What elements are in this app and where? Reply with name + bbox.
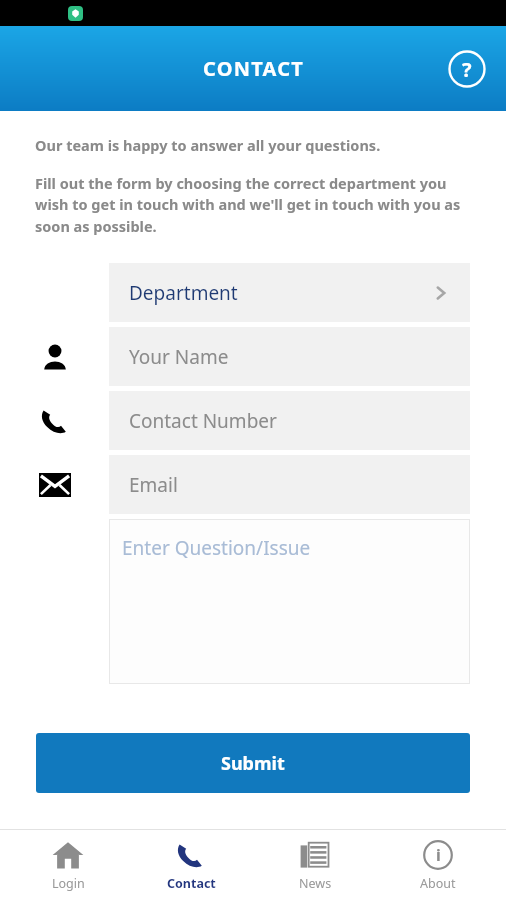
staticText: Contact Number (129, 408, 277, 434)
staticText: Login (52, 875, 85, 892)
staticText: Our team is happy to answer all your que… (35, 135, 381, 155)
button[interactable]: Department (109, 263, 470, 322)
button[interactable]: Contact Number (109, 391, 470, 450)
button[interactable]: Your Name (109, 327, 470, 386)
staticText: Contact (167, 875, 216, 892)
button[interactable]: News (260, 830, 370, 900)
staticText: i (436, 844, 441, 866)
button[interactable]: Help (445, 47, 489, 91)
staticText: News (299, 875, 332, 892)
staticText: Email (129, 472, 178, 498)
staticText: ? (462, 56, 472, 83)
staticText: Your Name (129, 344, 229, 370)
staticText: About (420, 875, 456, 892)
button[interactable]: Email (109, 455, 470, 514)
staticText: Department (129, 280, 238, 306)
button[interactable]: Login (13, 830, 123, 900)
button[interactable]: Enter Question/Issue (109, 519, 470, 684)
staticText: Submit (221, 751, 285, 776)
staticText: CONTACT (203, 55, 304, 82)
button[interactable]: i (383, 830, 493, 900)
staticText: Fill out the form by choosing the correc… (35, 173, 480, 237)
button[interactable]: Contact (136, 830, 246, 900)
staticText: Enter Question/Issue (122, 535, 311, 561)
button[interactable]: Submit (36, 733, 470, 793)
